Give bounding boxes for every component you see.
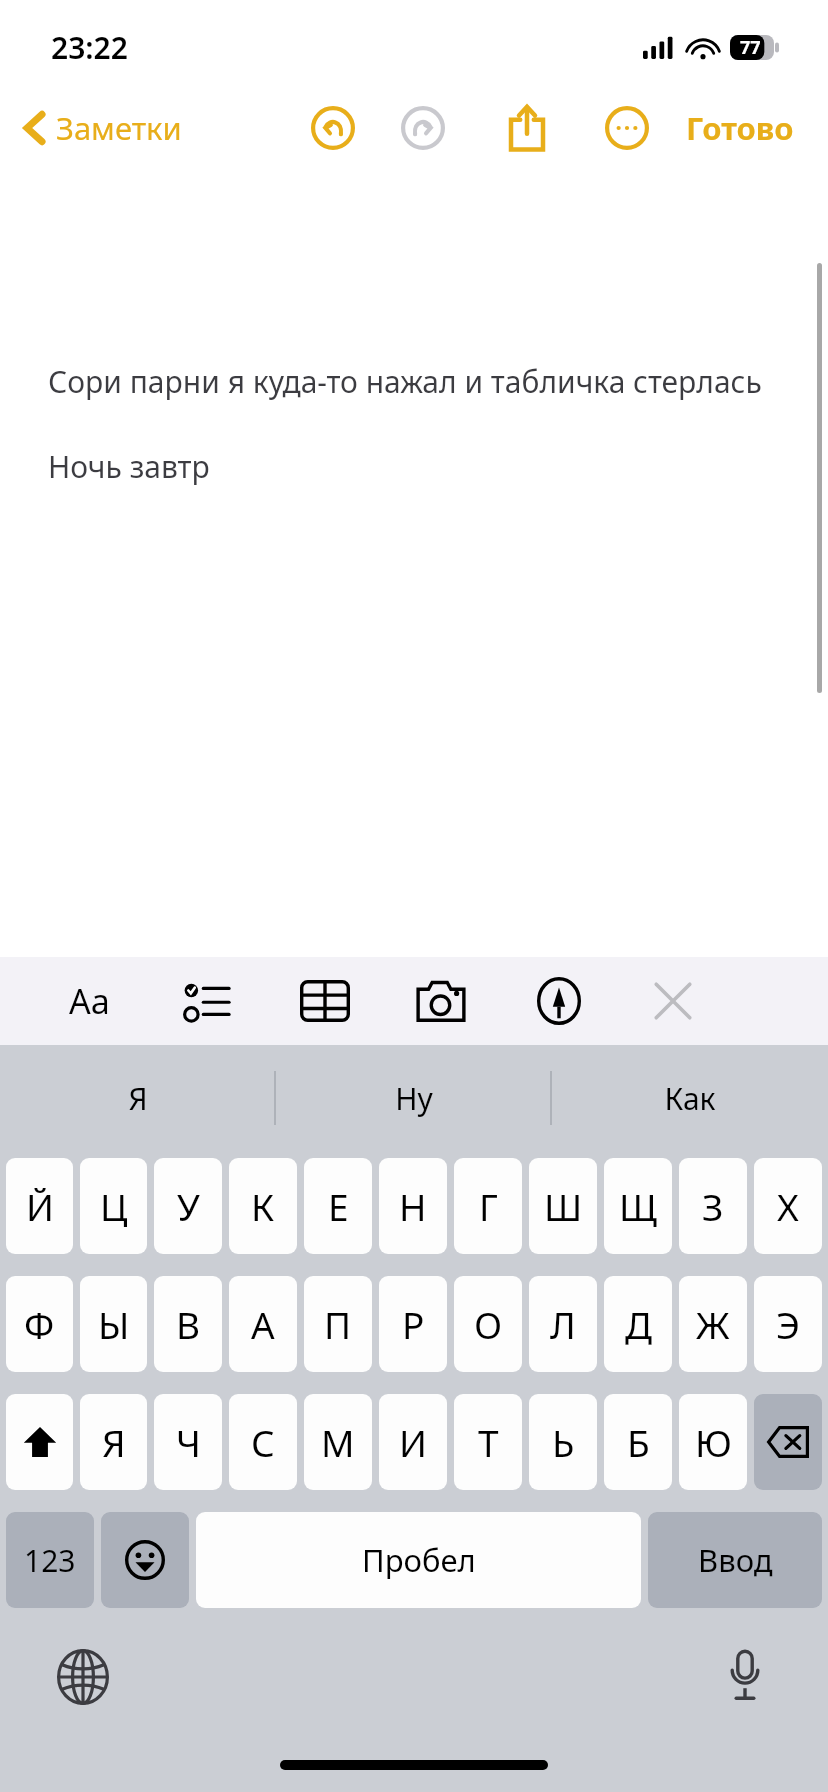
- staticText: М: [321, 1417, 355, 1467]
- button[interactable]: Change keyboard: [48, 1642, 118, 1712]
- button[interactable]: Ю: [679, 1394, 747, 1490]
- staticText: Пробел: [362, 1539, 476, 1581]
- staticText: О: [474, 1299, 503, 1349]
- staticText: Я: [102, 1417, 126, 1467]
- staticText: Ч: [176, 1417, 201, 1467]
- button[interactable]: Ы: [80, 1276, 147, 1372]
- button[interactable]: Checklist: [176, 965, 238, 1037]
- staticText: Сори парни я куда-то нажал и табличка ст…: [48, 361, 762, 402]
- button[interactable]: К: [229, 1158, 297, 1254]
- button[interactable]: Share: [498, 99, 556, 157]
- button[interactable]: Щ: [604, 1158, 672, 1254]
- button[interactable]: У: [154, 1158, 222, 1254]
- button[interactable]: 123: [6, 1512, 94, 1608]
- staticText: 23:22: [51, 27, 128, 68]
- button[interactable]: В: [154, 1276, 222, 1372]
- button[interactable]: Й: [6, 1158, 73, 1254]
- button[interactable]: О: [454, 1276, 522, 1372]
- button[interactable]: Format text: [58, 965, 120, 1037]
- staticText: Ю: [695, 1417, 732, 1467]
- staticText: Ц: [100, 1181, 128, 1231]
- button[interactable]: Ш: [529, 1158, 597, 1254]
- button[interactable]: Т: [454, 1394, 522, 1490]
- button[interactable]: Заметки: [18, 101, 188, 155]
- staticText: Д: [625, 1299, 652, 1349]
- staticText: Ш: [544, 1181, 583, 1231]
- button[interactable]: Ь: [529, 1394, 597, 1490]
- staticText: Как: [664, 1078, 716, 1119]
- button[interactable]: Shift: [6, 1394, 73, 1490]
- button[interactable]: Ф: [6, 1276, 73, 1372]
- button[interactable]: Emoji: [101, 1512, 189, 1608]
- staticText: Й: [26, 1181, 54, 1231]
- button[interactable]: М: [304, 1394, 372, 1490]
- staticText: 123: [24, 1540, 76, 1581]
- button[interactable]: Как: [552, 1045, 828, 1151]
- button[interactable]: И: [379, 1394, 447, 1490]
- button[interactable]: Close keyboard: [642, 965, 704, 1037]
- staticText: З: [702, 1181, 724, 1231]
- staticText: Щ: [619, 1181, 657, 1231]
- button[interactable]: Ну: [276, 1045, 552, 1151]
- button[interactable]: З: [679, 1158, 747, 1254]
- staticText: Т: [478, 1417, 499, 1467]
- staticText: П: [324, 1299, 352, 1349]
- staticText: Ф: [24, 1299, 55, 1349]
- staticText: Г: [479, 1181, 498, 1231]
- button[interactable]: Готово: [680, 101, 800, 155]
- button[interactable]: Б: [604, 1394, 672, 1490]
- button[interactable]: Я: [80, 1394, 147, 1490]
- staticText: Aa: [69, 978, 110, 1024]
- button[interactable]: Х: [754, 1158, 822, 1254]
- staticText: А: [251, 1299, 275, 1349]
- staticText: Л: [550, 1299, 576, 1349]
- staticText: Готово: [686, 107, 794, 149]
- staticText: Н: [399, 1181, 427, 1231]
- staticText: Ь: [552, 1417, 575, 1467]
- button[interactable]: Л: [529, 1276, 597, 1372]
- staticText: Е: [328, 1181, 349, 1231]
- button[interactable]: Р: [379, 1276, 447, 1372]
- button[interactable]: Н: [379, 1158, 447, 1254]
- staticText: Ж: [696, 1299, 730, 1349]
- button[interactable]: More: [598, 99, 656, 157]
- button[interactable]: Table: [294, 965, 356, 1037]
- staticText: Ы: [98, 1299, 130, 1349]
- staticText: Х: [777, 1181, 799, 1231]
- staticText: Б: [627, 1417, 650, 1467]
- button[interactable]: Redo: [394, 99, 452, 157]
- staticText: У: [177, 1181, 200, 1231]
- staticText: Я: [128, 1078, 148, 1119]
- staticText: С: [251, 1417, 275, 1467]
- button[interactable]: А: [229, 1276, 297, 1372]
- button[interactable]: Ч: [154, 1394, 222, 1490]
- staticText: Э: [776, 1299, 800, 1349]
- staticText: В: [176, 1299, 201, 1349]
- button[interactable]: Dictation: [710, 1642, 780, 1712]
- staticText: К: [251, 1181, 275, 1231]
- button[interactable]: Пробел: [196, 1512, 641, 1608]
- staticText: Ну: [395, 1078, 433, 1119]
- button[interactable]: Ввод: [648, 1512, 822, 1608]
- button[interactable]: Backspace: [754, 1394, 822, 1490]
- button[interactable]: Я: [0, 1045, 276, 1151]
- button[interactable]: Г: [454, 1158, 522, 1254]
- button[interactable]: Э: [754, 1276, 822, 1372]
- staticText: Заметки: [56, 107, 182, 149]
- button[interactable]: Camera: [410, 965, 472, 1037]
- button[interactable]: Е: [304, 1158, 372, 1254]
- staticText: И: [399, 1417, 427, 1467]
- staticText: 77: [740, 35, 761, 60]
- button[interactable]: Ц: [80, 1158, 147, 1254]
- button[interactable]: П: [304, 1276, 372, 1372]
- button[interactable]: Markup: [528, 965, 590, 1037]
- button[interactable]: Д: [604, 1276, 672, 1372]
- button[interactable]: С: [229, 1394, 297, 1490]
- staticText: Ввод: [698, 1539, 773, 1581]
- staticText: Ночь завтр: [48, 446, 210, 487]
- staticText: Р: [402, 1299, 425, 1349]
- button[interactable]: Undo: [304, 99, 362, 157]
- button[interactable]: Ж: [679, 1276, 747, 1372]
